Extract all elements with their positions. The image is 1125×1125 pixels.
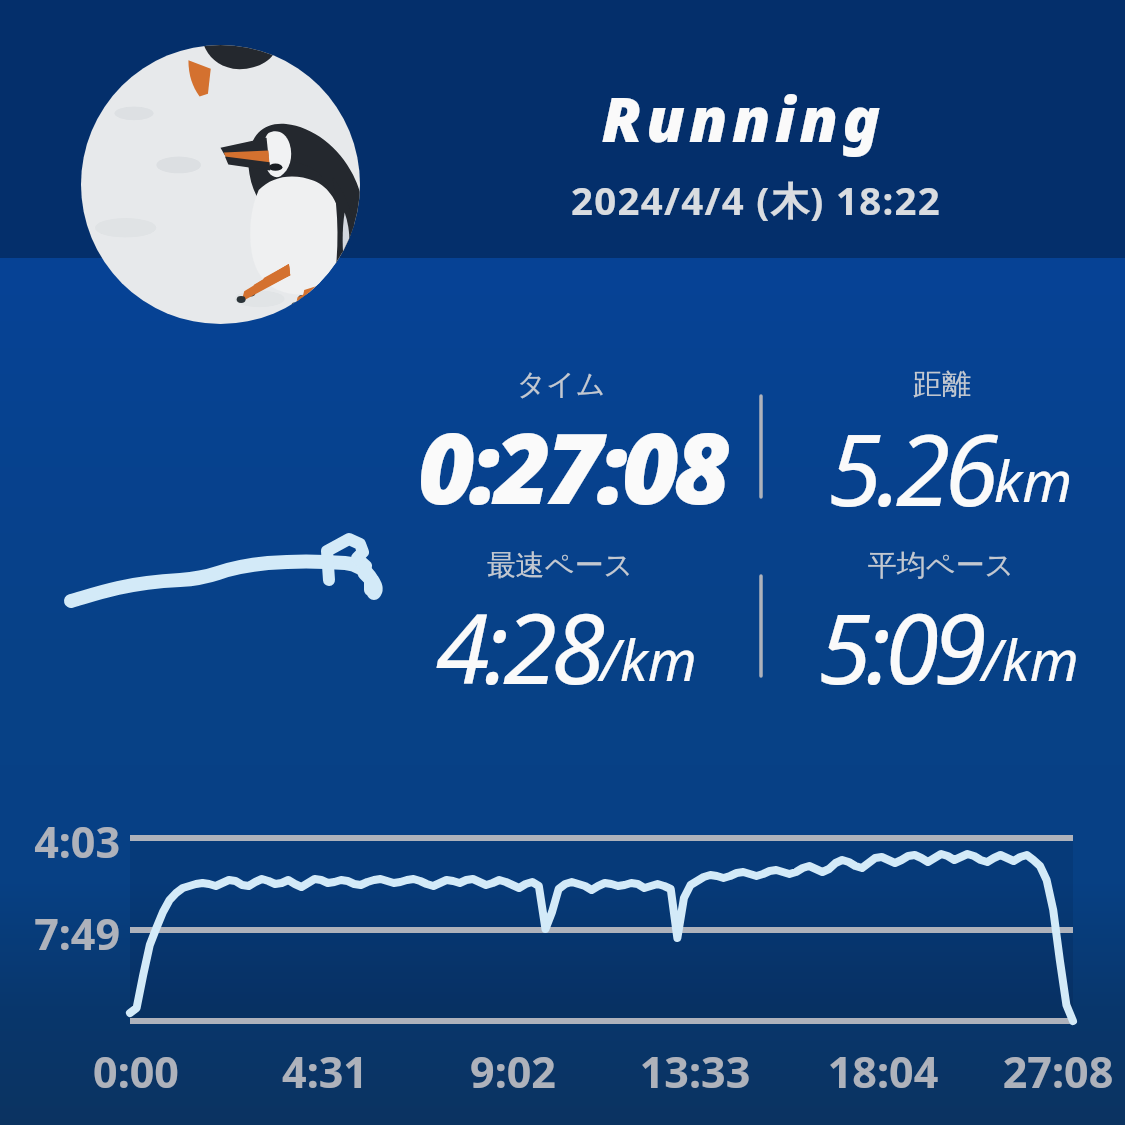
staticText: Running [343, 76, 1125, 160]
staticText: km [994, 441, 1073, 519]
staticText: 13:33 [295, 1042, 1095, 1101]
staticText: 5.26 [828, 401, 994, 534]
staticText: /km [600, 621, 697, 697]
staticText: 18:04 [483, 1042, 1125, 1101]
staticText: 4:28 [436, 580, 600, 712]
staticText: 平均ペース [541, 547, 1125, 584]
staticText: 9:02 [113, 1042, 913, 1101]
staticText: 4:31 [0, 1042, 725, 1101]
staticText: 2024/4/4 (木) 18:22 [356, 174, 1125, 226]
staticText: 0:27:08 [418, 399, 726, 532]
staticText: 距離 [542, 366, 1125, 403]
staticText: 27:08 [658, 1042, 1125, 1101]
staticText: タイム [161, 366, 961, 403]
staticText: 5:09 [818, 580, 982, 712]
staticText: /km [982, 621, 1079, 697]
staticText: 0:00 [0, 1042, 536, 1101]
button[interactable]: Activity photo [81, 45, 360, 324]
staticText: 4:03 [0, 812, 120, 871]
staticText: 7:49 [0, 904, 120, 963]
staticText: 最速ペース [160, 547, 960, 584]
